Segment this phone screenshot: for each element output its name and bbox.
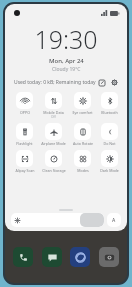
button[interactable]: Mobile Data bbox=[39, 91, 68, 120]
button[interactable]: Dark Mode bbox=[97, 149, 122, 174]
staticText: Eye comfort bbox=[72, 110, 93, 115]
staticText: Used today: 0 kB; Remaining today bbox=[14, 79, 96, 86]
button[interactable]: Camera bbox=[99, 247, 119, 267]
staticText: Bluetooth bbox=[101, 110, 118, 115]
staticText: Modes bbox=[77, 168, 89, 173]
button[interactable]: Clean Storage bbox=[39, 149, 68, 174]
button[interactable]: Auto Rotate bbox=[68, 122, 97, 147]
button[interactable]: Edit tiles bbox=[96, 77, 107, 88]
staticText: Flashlight bbox=[16, 141, 33, 146]
staticText: Dark Mode bbox=[100, 168, 119, 173]
button[interactable]: Do Not Disturb bbox=[97, 122, 122, 147]
button[interactable]: Auto brightness bbox=[107, 213, 121, 227]
staticText: 19:30 bbox=[34, 22, 98, 56]
staticText: OPPO bbox=[20, 110, 30, 115]
staticText: Do Not Disturb bbox=[97, 141, 122, 146]
button[interactable]: Bluetooth bbox=[97, 91, 122, 116]
button[interactable]: Settings bbox=[109, 77, 120, 88]
staticText: Auto Rotate bbox=[73, 141, 93, 146]
staticText: Cloudy 19°C bbox=[52, 66, 81, 73]
button[interactable]: Browser bbox=[70, 247, 90, 267]
button[interactable]: Flashlight bbox=[10, 122, 39, 147]
button[interactable]: OPPO bbox=[10, 91, 39, 116]
staticText: Airplane Mode bbox=[41, 141, 66, 146]
staticText: Mobile Data bbox=[43, 110, 64, 115]
button[interactable]: Phone bbox=[13, 247, 33, 267]
button[interactable]: Messages bbox=[42, 247, 62, 267]
button[interactable]: Alipay Scan bbox=[10, 149, 39, 174]
staticText: Off bbox=[51, 115, 56, 119]
staticText: Clean Storage bbox=[42, 168, 66, 173]
staticText: Mon, Apr 24 bbox=[49, 57, 84, 65]
button[interactable]: Modes bbox=[68, 149, 97, 174]
button[interactable]: Eye comfort bbox=[68, 91, 97, 116]
button[interactable]: Brightness bbox=[11, 213, 104, 227]
staticText: A bbox=[112, 217, 116, 224]
staticText: Alipay Scan bbox=[15, 168, 35, 173]
button[interactable]: Airplane Mode bbox=[39, 122, 68, 147]
